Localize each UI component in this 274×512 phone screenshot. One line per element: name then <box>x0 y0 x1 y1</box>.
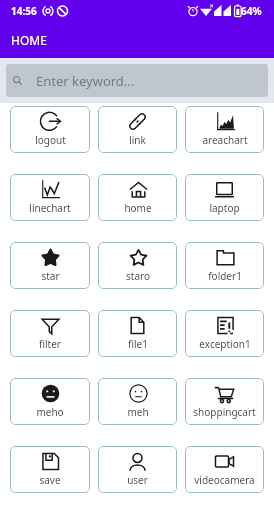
button[interactable]: star <box>10 242 90 289</box>
button[interactable]: staro <box>98 242 177 289</box>
button[interactable]: user <box>98 446 177 493</box>
staticText: filter <box>39 337 61 351</box>
staticText: logout <box>35 133 66 147</box>
staticText: HOME <box>11 32 47 48</box>
button[interactable]: home <box>98 174 177 221</box>
button[interactable]: exception1 <box>185 310 264 357</box>
button[interactable]: linechart <box>10 174 90 221</box>
staticText: user <box>127 473 148 487</box>
button[interactable]: filter <box>10 310 90 357</box>
staticText: file1 <box>128 337 148 351</box>
button[interactable]: videocamera <box>185 446 264 493</box>
staticText: folder1 <box>208 269 242 283</box>
staticText: 64% <box>241 4 262 18</box>
button[interactable]: save <box>10 446 90 493</box>
staticText: laptop <box>209 201 240 215</box>
button[interactable]: meho <box>10 378 90 425</box>
button[interactable]: laptop <box>185 174 264 221</box>
staticText: home <box>124 201 152 215</box>
staticText: meho <box>36 405 64 419</box>
button[interactable]: shoppingcart <box>185 378 264 425</box>
staticText: videocamera <box>194 473 255 487</box>
button[interactable]: logout <box>10 106 90 153</box>
button[interactable]: folder1 <box>185 242 264 289</box>
staticText: meh <box>127 405 149 419</box>
button[interactable]: meh <box>98 378 177 425</box>
button[interactable]: areachart <box>185 106 264 153</box>
staticText: areachart <box>202 133 248 147</box>
button[interactable]: HOME <box>0 22 274 58</box>
staticText: star <box>41 269 60 283</box>
button[interactable]: Enter keyword... <box>6 64 268 97</box>
staticText: linechart <box>29 201 71 215</box>
staticText: link <box>129 133 146 147</box>
staticText: save <box>39 473 61 487</box>
staticText: staro <box>126 269 150 283</box>
staticText: 14:56 <box>11 4 37 18</box>
staticText: shoppingcart <box>193 405 256 419</box>
button[interactable]: link <box>98 106 177 153</box>
staticText: Enter keyword... <box>36 72 135 90</box>
staticText: exception1 <box>199 337 251 351</box>
button[interactable]: file1 <box>98 310 177 357</box>
